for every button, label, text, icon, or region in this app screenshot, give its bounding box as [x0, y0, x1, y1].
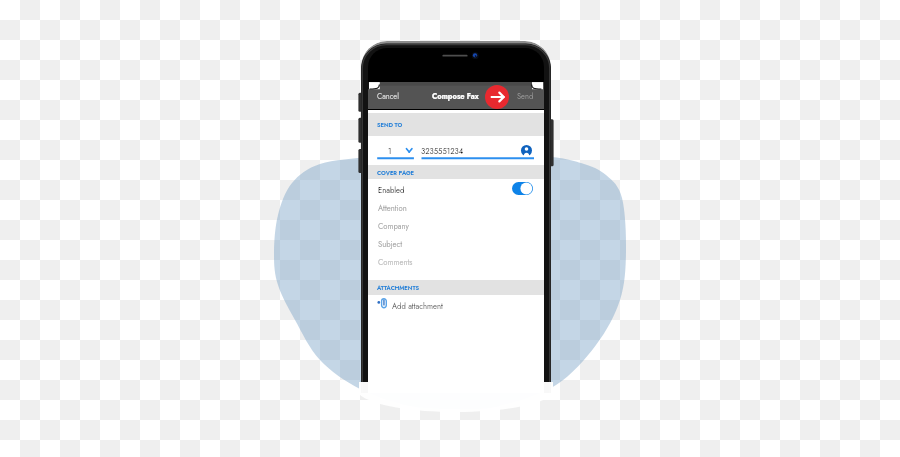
staticText: Comments [378, 257, 413, 268]
button[interactable]: Cancel [374, 83, 402, 109]
button[interactable]: 1 [368, 136, 544, 165]
staticText: Cancel [377, 91, 399, 102]
staticText: 1 [388, 146, 392, 157]
staticText: ATTACHMENTS [377, 284, 420, 293]
staticText: Enabled [378, 185, 405, 196]
staticText: Add attachment [392, 301, 443, 312]
staticText: Compose Fax [432, 91, 479, 102]
button[interactable]: Company [368, 215, 544, 233]
staticText: Attention [378, 203, 407, 214]
staticText: 3235551234 [421, 146, 464, 157]
button[interactable]: Enabled [368, 179, 544, 197]
button[interactable]: Send [514, 83, 536, 109]
staticText: Company [378, 221, 409, 232]
button[interactable]: Add attachment [368, 295, 544, 315]
staticText: COVER PAGE [377, 169, 415, 178]
button[interactable]: Subject [368, 233, 544, 251]
button[interactable]: Send fax [485, 85, 509, 109]
button[interactable]: Attention [368, 197, 544, 215]
staticText: SEND TO [377, 121, 403, 130]
staticText: Send [517, 91, 534, 102]
button[interactable]: Comments [368, 251, 544, 269]
staticText: Subject [378, 239, 403, 250]
